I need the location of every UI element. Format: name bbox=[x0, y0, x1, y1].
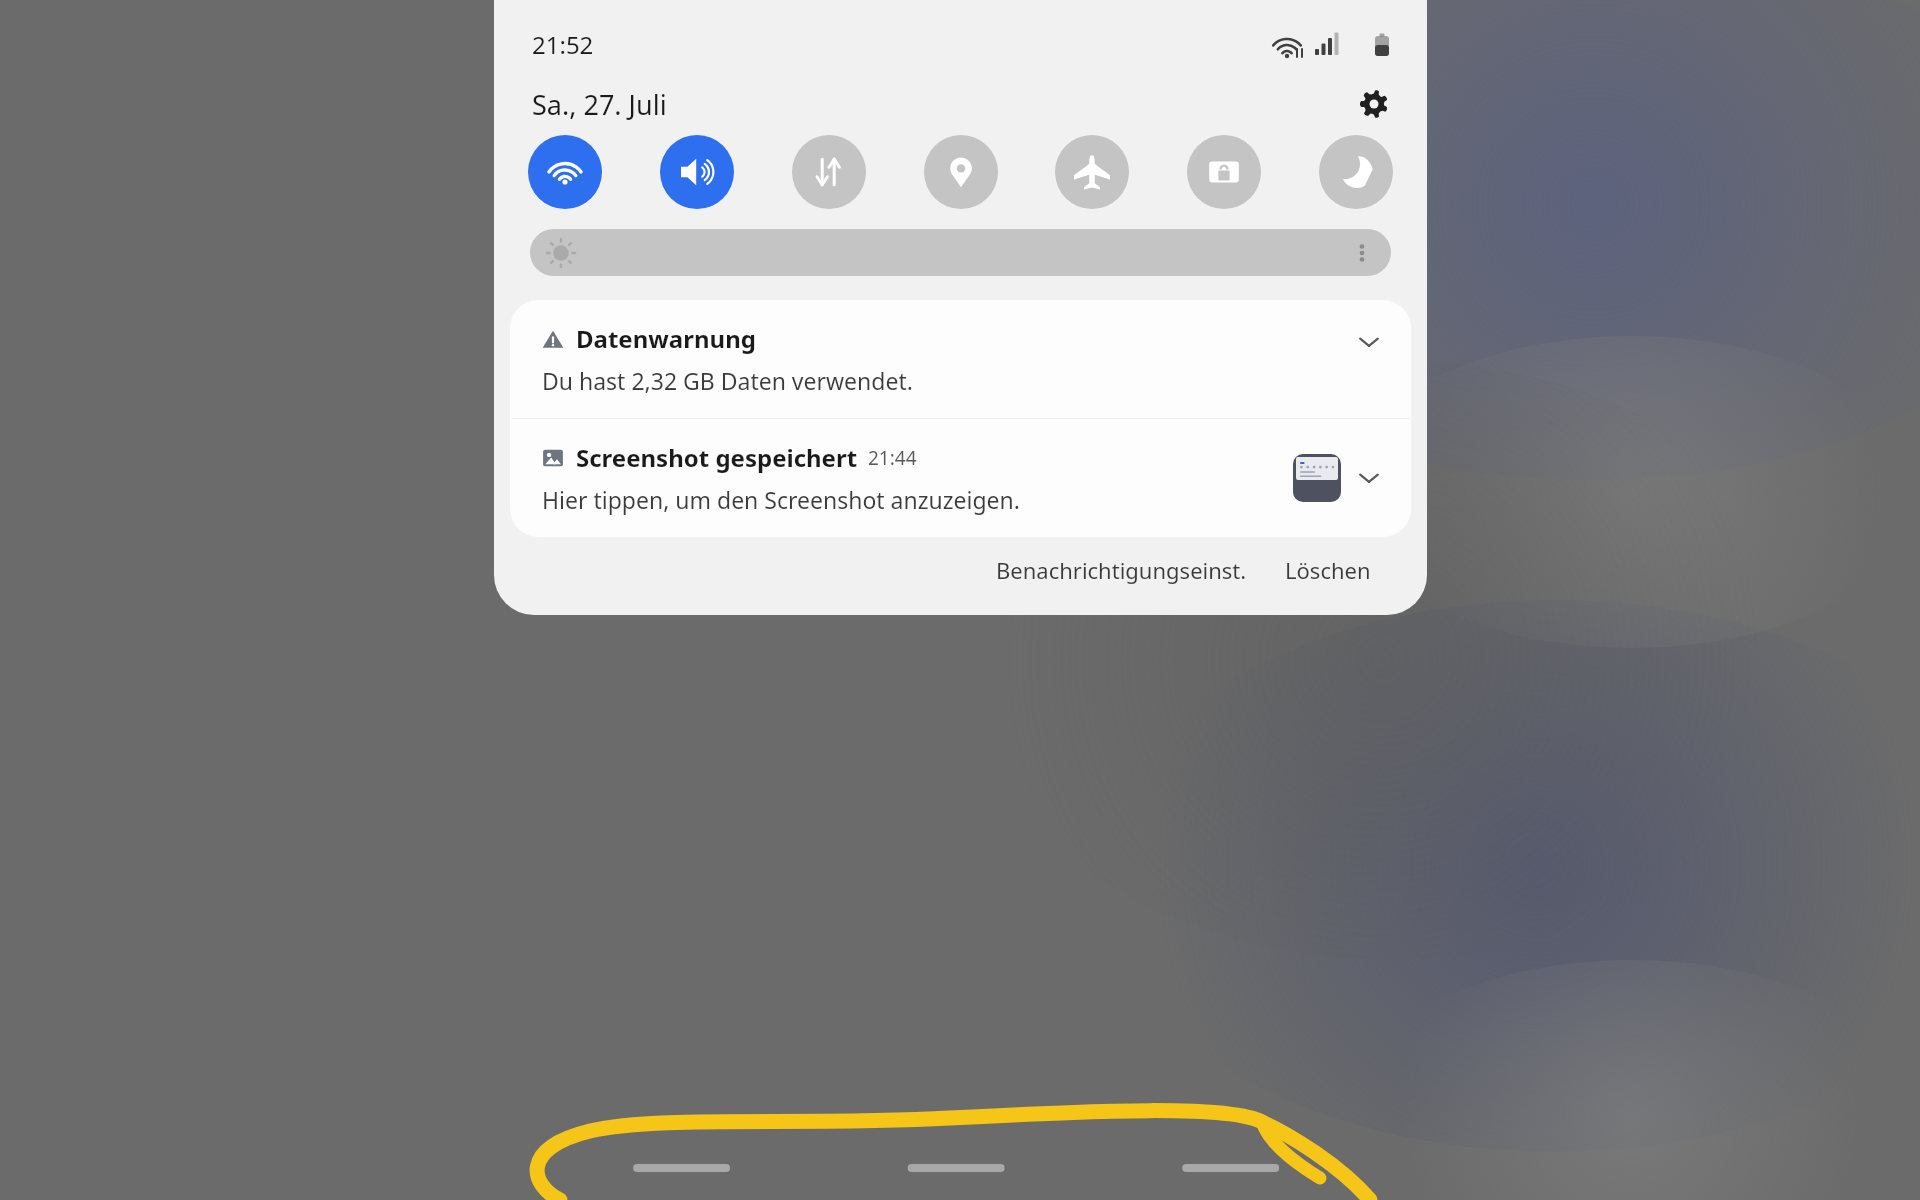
button[interactable]: Standort bbox=[924, 135, 998, 209]
button[interactable]: Flugmodus bbox=[1055, 135, 1129, 209]
staticText: Hier tippen, um den Screenshot anzuzeige… bbox=[542, 484, 1020, 515]
staticText: Du hast 2,32 GB Daten verwendet. bbox=[542, 365, 913, 396]
staticText: Löschen bbox=[1285, 555, 1371, 585]
button[interactable]: Helligkeit bbox=[530, 229, 1391, 276]
staticText: Benachrichtigungseinst. bbox=[996, 555, 1247, 585]
staticText: 21:52 bbox=[532, 28, 594, 61]
button[interactable]: Mobile Daten bbox=[792, 135, 866, 209]
button[interactable]: Nicht stören bbox=[1319, 135, 1393, 209]
button[interactable]: Datenwarnung bbox=[510, 300, 1411, 418]
staticText: Datenwarnung bbox=[576, 322, 756, 355]
staticText: 21:44 bbox=[868, 445, 917, 471]
button[interactable]: Einstellungen bbox=[1351, 81, 1397, 127]
staticText: Sa., 27. Juli bbox=[532, 86, 667, 123]
button[interactable]: Bildschirm drehen bbox=[1187, 135, 1261, 209]
button[interactable]: Ton bbox=[660, 135, 734, 209]
button[interactable]: WLAN bbox=[528, 135, 602, 209]
button[interactable]: Benachrichtigungseinst. bbox=[988, 547, 1255, 593]
button[interactable]: Screenshot gespeichert bbox=[510, 419, 1411, 537]
button[interactable]: Erweitern bbox=[1349, 322, 1389, 362]
staticText: Screenshot gespeichert bbox=[576, 441, 858, 474]
button[interactable]: Erweitern bbox=[1349, 458, 1389, 498]
button[interactable]: Löschen bbox=[1277, 547, 1379, 593]
